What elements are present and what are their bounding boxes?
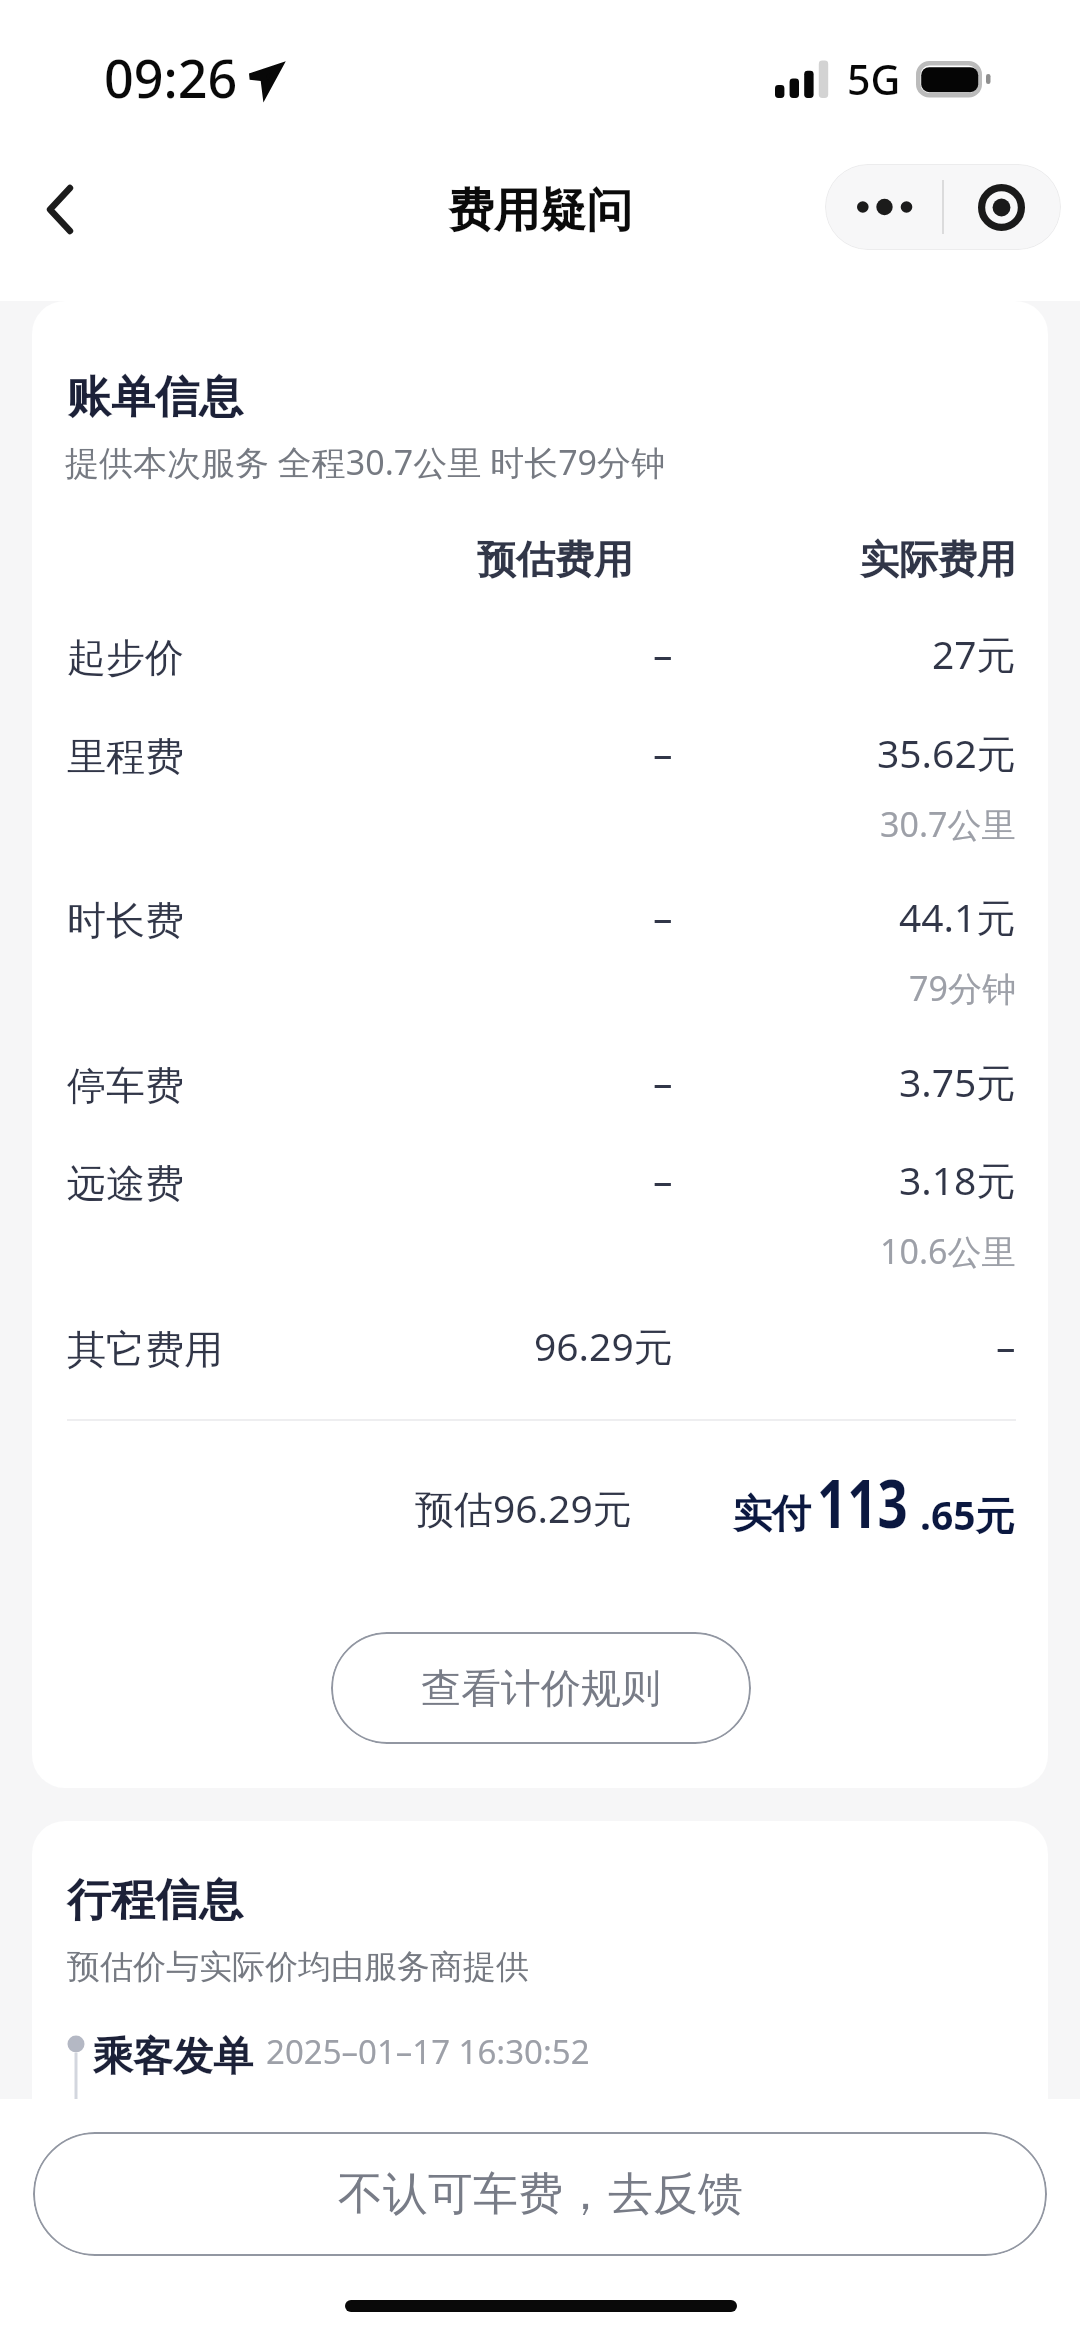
staticText: 2025–01–17 16:30:52 [266,2029,590,2074]
staticText: 预估费用 [477,535,633,584]
staticText: .65元 [920,1488,1015,1541]
staticText: 里程费 [67,732,184,781]
staticText: 乘客发单 [93,2031,253,2081]
staticText: 3.18元 [899,1153,1016,1206]
staticText: 5G [847,51,901,107]
staticText: 44.1元 [899,890,1016,943]
staticText: 行程信息 [67,1873,243,1928]
staticText: 提供本次服务 全程30.7公里 时长79分钟 [65,439,666,485]
staticText: 远途费 [67,1159,184,1208]
staticText: 停车费 [67,1061,184,1110]
staticText: 27元 [932,627,1016,680]
staticText: – [653,890,673,943]
staticText: 30.7公里 [880,801,1016,847]
staticText: 113 [817,1457,908,1547]
staticText: 实付 [733,1489,811,1538]
button[interactable]: More options [825,164,942,250]
staticText: 其它费用 [67,1325,223,1374]
staticText: 账单信息 [67,370,243,425]
staticText: 预估96.29元 [415,1481,632,1534]
staticText: 不认可车费，去反馈 [338,2166,743,2223]
staticText: 起步价 [67,633,184,682]
staticText: – [653,726,673,779]
staticText: 35.62元 [877,726,1016,779]
staticText: 10.6公里 [880,1228,1016,1274]
staticText: 79分钟 [909,965,1016,1011]
staticText: 3.75元 [899,1055,1016,1108]
button[interactable]: 查看计价规则 [331,1632,751,1744]
staticText: – [653,1055,673,1108]
button[interactable]: Close mini program [944,164,1061,250]
staticText: – [653,627,673,680]
staticText: 实际费用 [860,535,1016,584]
staticText: 预估价与实际价均由服务商提供 [67,1946,529,1988]
staticText: – [996,1319,1016,1372]
button[interactable]: Back [12,162,108,256]
staticText: 费用疑问 [448,182,632,240]
button[interactable]: 不认可车费，去反馈 [33,2132,1047,2256]
staticText: 查看计价规则 [421,1663,661,1713]
staticText: 09:26 [104,42,238,113]
staticText: 96.29元 [534,1319,673,1372]
staticText: 时长费 [67,896,184,945]
staticText: – [653,1153,673,1206]
